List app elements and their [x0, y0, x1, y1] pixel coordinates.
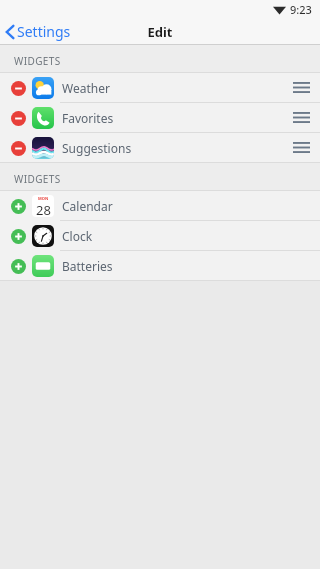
staticText: Clock [62, 228, 93, 244]
staticText: Calendar [62, 198, 113, 214]
button[interactable]: Remove Favorites [0, 103, 320, 132]
button[interactable]: Remove Weather [8, 78, 28, 98]
staticText: 28 [36, 201, 51, 217]
button[interactable]: Add Clock [8, 226, 28, 246]
staticText: 9:23 [290, 2, 312, 17]
button[interactable]: Add Batteries [8, 256, 28, 276]
staticText: Batteries [62, 258, 113, 274]
button[interactable]: Add Calendar [8, 196, 28, 216]
button[interactable]: Add Clock [0, 221, 320, 250]
button[interactable]: Settings [0, 19, 79, 44]
button[interactable]: Reorder Weather [284, 73, 318, 102]
button[interactable]: Remove Suggestions [8, 138, 28, 158]
button[interactable]: Remove Suggestions [0, 133, 320, 162]
staticText: MON [38, 196, 49, 201]
button[interactable]: Add Calendar [0, 191, 320, 220]
staticText: Weather [62, 80, 110, 96]
button[interactable]: Reorder Favorites [284, 103, 318, 132]
button[interactable]: Remove Favorites [8, 108, 28, 128]
staticText: Suggestions [62, 140, 132, 156]
staticText: Edit [147, 23, 173, 41]
button[interactable]: Reorder Suggestions [284, 133, 318, 162]
staticText: WIDGETS [14, 172, 61, 186]
button[interactable]: Remove Weather [0, 73, 320, 102]
staticText: Settings [17, 22, 71, 41]
button[interactable]: Add Batteries [0, 251, 320, 280]
staticText: WIDGETS [14, 54, 61, 68]
staticText: Favorites [62, 110, 114, 126]
